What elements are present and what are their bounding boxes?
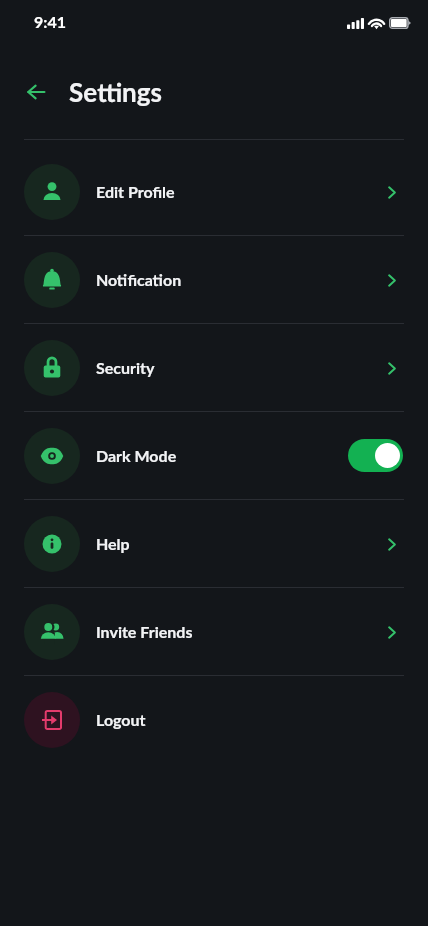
button[interactable]: Dark Mode toggle [348,439,403,472]
button[interactable]: Logout [0,676,428,763]
button[interactable]: Security [0,324,428,411]
staticText: Settings [69,76,162,107]
button[interactable]: Dark Mode [0,412,428,499]
staticText: Invite Friends [96,622,193,641]
staticText: 9:41 [34,12,66,31]
staticText: Security [96,358,155,377]
button[interactable]: Back [18,74,54,110]
staticText: Notification [96,270,182,289]
button[interactable]: Invite Friends [0,588,428,675]
button[interactable]: Help [0,500,428,587]
button[interactable]: Notification [0,236,428,323]
staticText: Edit Profile [96,182,175,201]
staticText: Help [96,534,130,553]
staticText: Logout [96,710,146,729]
button[interactable]: Edit Profile [0,148,428,235]
staticText: Dark Mode [96,446,177,465]
